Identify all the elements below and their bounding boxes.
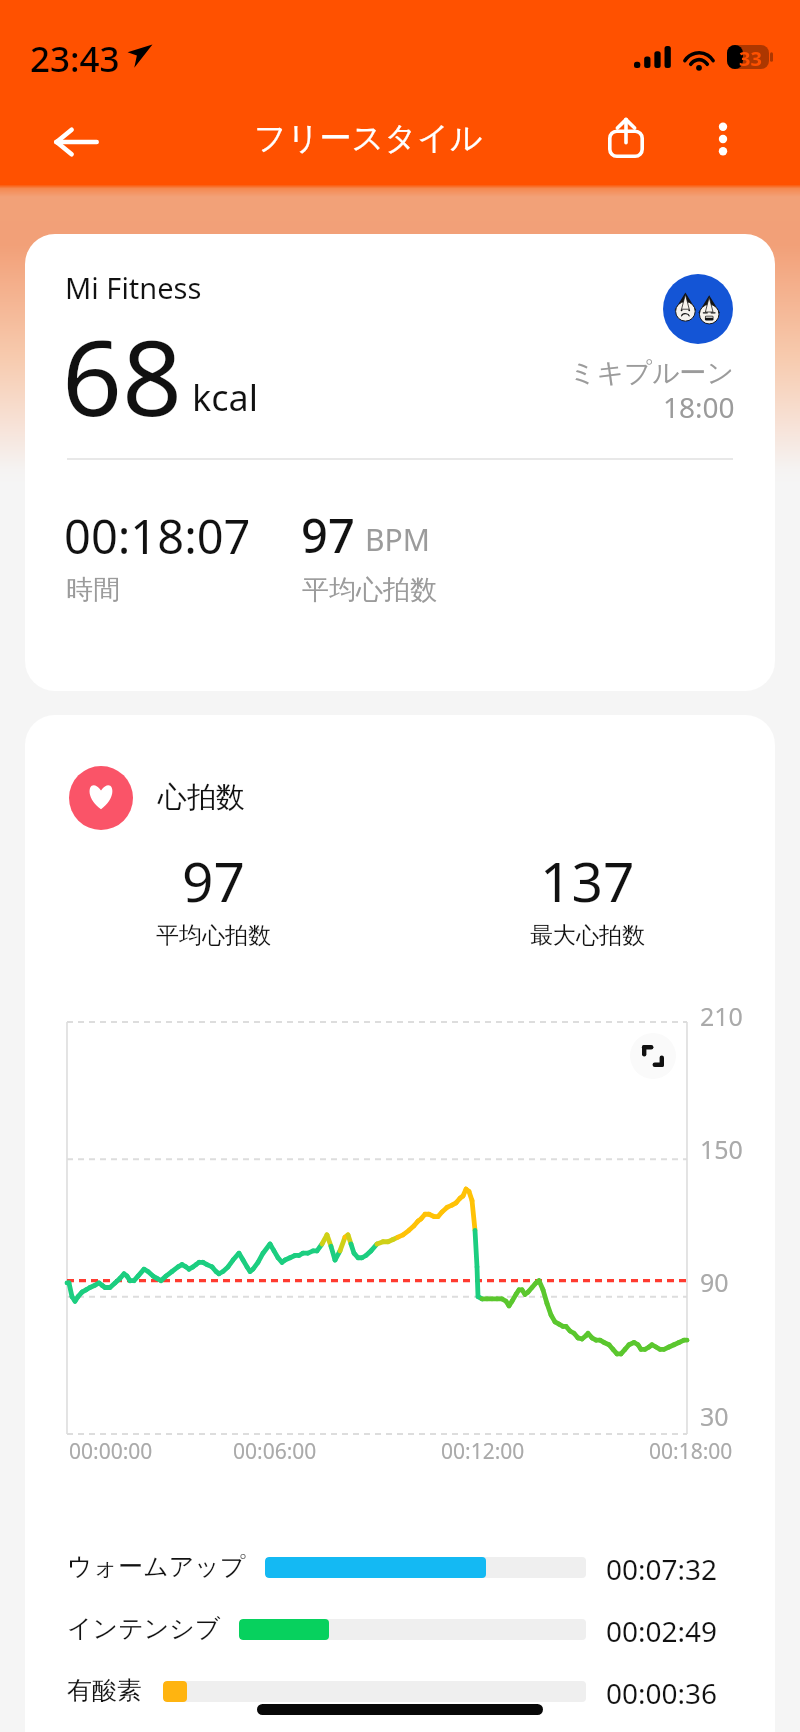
staticText: 心拍数 (158, 779, 245, 816)
staticText: Mi Fitness (65, 268, 202, 307)
staticText: 最大心拍数 (530, 921, 645, 950)
staticText: 18:00 (663, 388, 735, 426)
staticText: 有酸素 (67, 1675, 142, 1706)
button[interactable]: Expand chart (630, 1033, 676, 1079)
button[interactable]: Mi Fitness (25, 234, 775, 691)
staticText: 00:00:00 (69, 1437, 153, 1466)
staticText: 97 (301, 503, 355, 567)
staticText: 137 (540, 843, 635, 918)
staticText: 00:12:00 (441, 1437, 525, 1466)
staticText: 平均心拍数 (302, 573, 437, 607)
staticText: kcal (192, 373, 258, 422)
staticText: 68 (62, 304, 183, 447)
staticText: 00:02:49 (606, 1612, 718, 1650)
staticText: 時間 (66, 573, 120, 607)
staticText: 210 (700, 999, 743, 1033)
staticText: ミキプルーン (569, 356, 735, 390)
staticText: ウォームアップ (67, 1551, 246, 1582)
staticText: 90 (700, 1265, 729, 1299)
button[interactable]: Back (45, 111, 107, 173)
button[interactable] (42, 1664, 758, 1718)
button[interactable] (42, 1540, 758, 1594)
staticText: 00:00:36 (606, 1674, 718, 1712)
staticText: 23:43 (30, 35, 120, 83)
button[interactable] (42, 1602, 758, 1656)
staticText: 平均心拍数 (156, 921, 271, 950)
staticText: 00:18:07 (64, 504, 251, 568)
button[interactable]: More options (691, 107, 755, 171)
staticText: フリースタイル (254, 118, 483, 158)
staticText: インテンシブ (67, 1613, 221, 1644)
staticText: 30 (700, 1399, 729, 1433)
staticText: 00:06:00 (233, 1437, 317, 1466)
button[interactable]: 心拍数 (25, 715, 775, 1732)
button[interactable]: Share (594, 106, 658, 170)
staticText: 150 (700, 1132, 743, 1166)
staticText: 00:18:00 (649, 1437, 733, 1466)
staticText: 00:07:32 (606, 1550, 718, 1588)
staticText: 33 (739, 45, 762, 69)
staticText: BPM (365, 519, 430, 560)
staticText: 97 (182, 843, 245, 918)
